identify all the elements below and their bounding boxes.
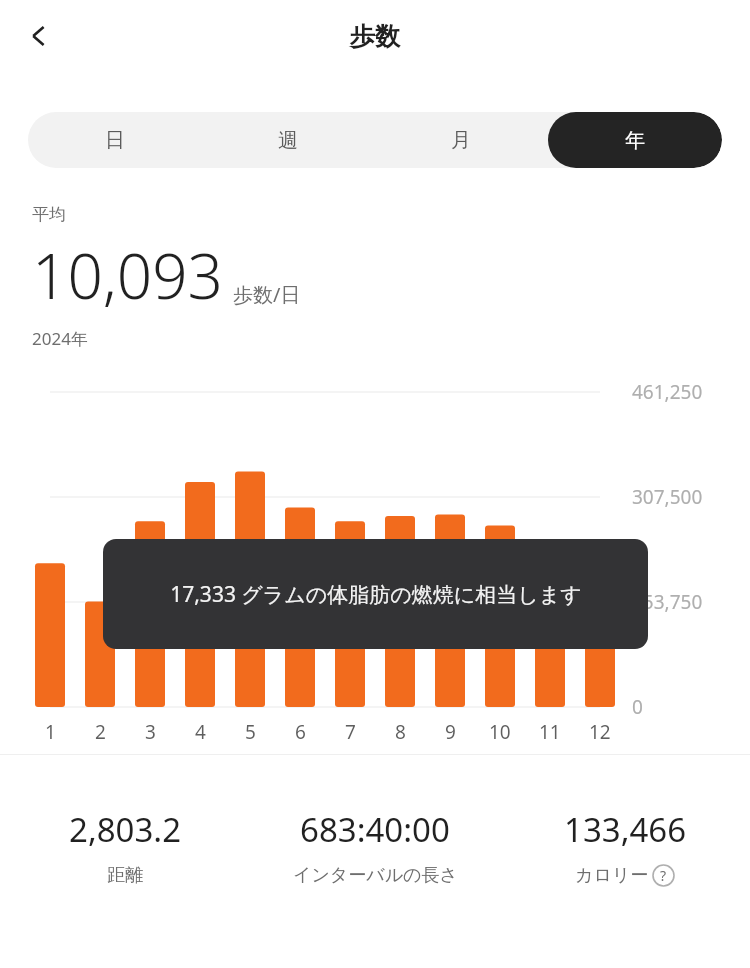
staticText: 3 [145, 719, 156, 745]
staticText: 11 [539, 719, 561, 745]
button[interactable]: 年 [548, 112, 722, 168]
staticText: 5 [245, 719, 256, 745]
staticText: 年 [625, 128, 645, 153]
staticText: 12 [589, 719, 611, 745]
button[interactable]: 日 [28, 112, 201, 168]
staticText: 683:40:00 [300, 807, 450, 852]
staticText: 6 [295, 719, 306, 745]
button[interactable]: 17,333 グラムの体脂肪の燃焼に相当します [103, 539, 648, 649]
staticText: 133,466 [564, 807, 687, 852]
staticText: 0 [632, 694, 643, 720]
staticText: 17,333 グラムの体脂肪の燃焼に相当します [170, 580, 582, 609]
staticText: インターバルの長さ [293, 864, 458, 887]
staticText: 平均 [32, 204, 66, 225]
staticText: 7 [345, 719, 356, 745]
staticText: 1 [45, 719, 56, 745]
staticText: 日 [105, 128, 125, 153]
staticText: 2 [95, 719, 106, 745]
staticText: 距離 [107, 864, 143, 887]
button[interactable]: Back [10, 8, 66, 64]
staticText: 153,750 [632, 589, 703, 615]
staticText: 歩数/日 [233, 281, 301, 308]
button[interactable]: Help [652, 864, 675, 887]
staticText: ? [660, 866, 667, 885]
staticText: 9 [445, 719, 456, 745]
button[interactable]: 683:40:00 [250, 807, 500, 887]
staticText: 307,500 [632, 484, 703, 510]
staticText: 461,250 [632, 379, 703, 405]
staticText: 2024年 [32, 327, 88, 350]
staticText: 10 [489, 719, 511, 745]
staticText: 2,803.2 [69, 807, 182, 852]
button[interactable]: 週 [201, 112, 374, 168]
staticText: 10,093 [32, 233, 223, 317]
staticText: 4 [195, 719, 206, 745]
button[interactable]: 2,803.2 [0, 807, 250, 887]
button[interactable]: 133,466 [500, 807, 750, 887]
staticText: 月 [451, 128, 471, 153]
staticText: 週 [278, 128, 298, 153]
button[interactable]: 月 [374, 112, 548, 168]
staticText: 歩数 [350, 21, 400, 52]
staticText: 8 [395, 719, 406, 745]
staticText: カロリー [575, 864, 649, 887]
